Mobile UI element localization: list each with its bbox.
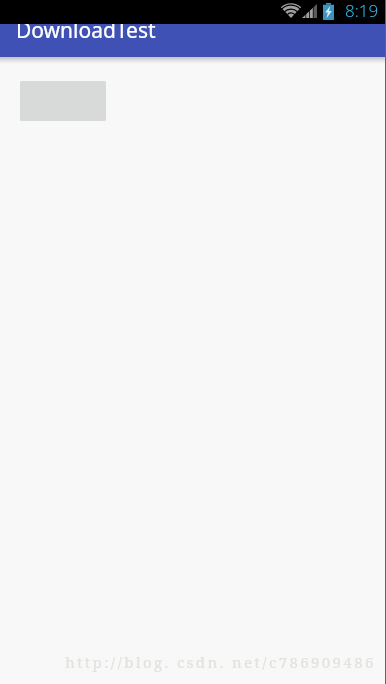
staticText: http://blog. csdn. net/c786909486: [65, 652, 376, 672]
other: Wi-Fi signal: [281, 4, 301, 18]
staticText: DownloadTest: [16, 16, 156, 45]
button[interactable]: DownloadTest: [0, 0, 386, 57]
staticText: 8:19: [345, 0, 379, 22]
other: Mobile signal: [302, 4, 317, 18]
other: Battery charging: [323, 3, 334, 20]
